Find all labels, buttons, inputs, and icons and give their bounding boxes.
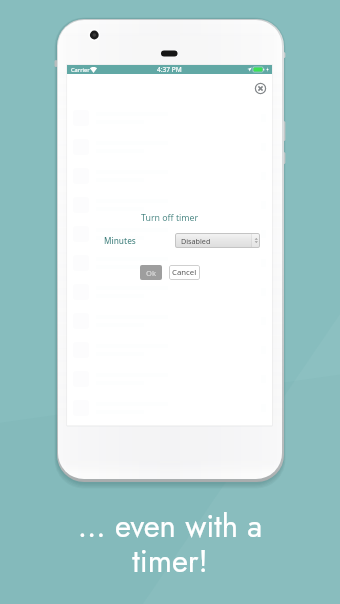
button[interactable]: Disabled — [175, 233, 260, 248]
button[interactable]: Close — [253, 81, 268, 96]
staticText: Carrier — [71, 66, 90, 74]
staticText: Disabled — [181, 236, 211, 246]
button[interactable]: Cancel — [169, 265, 200, 280]
staticText: Cancel — [172, 267, 197, 278]
staticText: ... even with a timer! — [0, 504, 340, 584]
staticText: 4:37 PM — [157, 65, 182, 74]
staticText: Minutes — [104, 235, 136, 246]
staticText: Ok — [146, 268, 156, 278]
staticText: Turn off timer — [141, 212, 199, 224]
button[interactable]: Ok — [140, 265, 162, 280]
